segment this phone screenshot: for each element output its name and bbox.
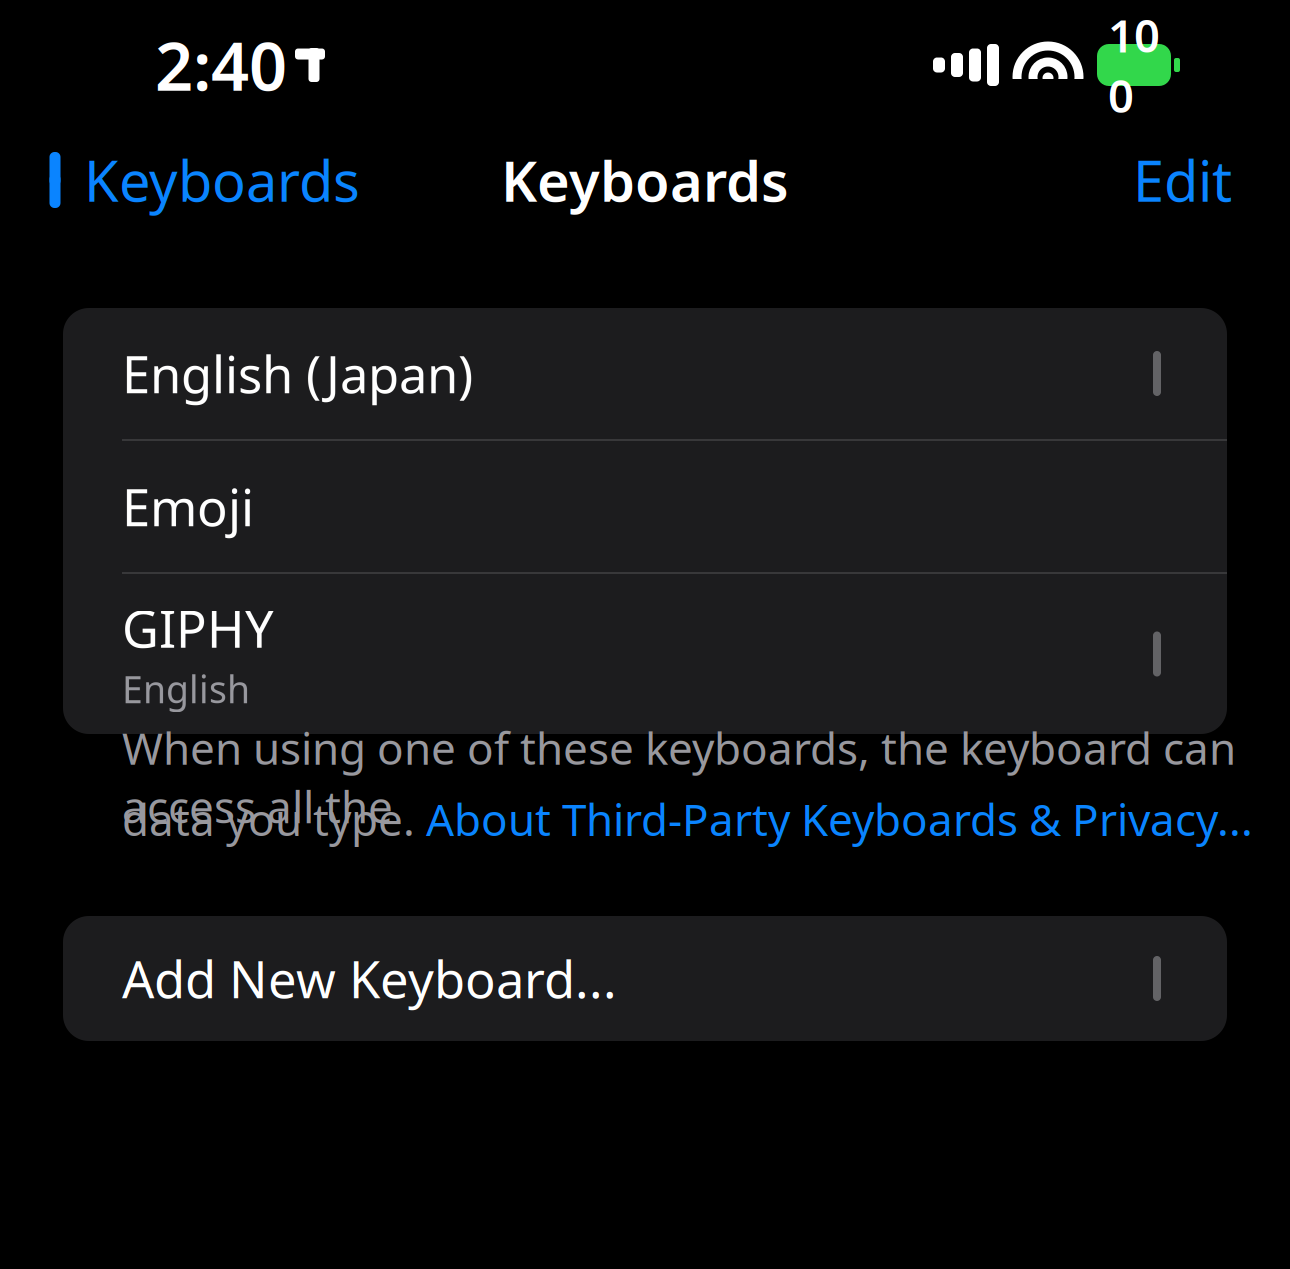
button[interactable]: About Third-Party Keyboards & Privacy... — [426, 790, 1253, 848]
button[interactable]: Edit — [1075, 132, 1290, 228]
staticText: English (Japan) — [122, 340, 473, 407]
staticText: Emoji — [122, 473, 254, 540]
staticText: When using one of these keyboards, the k… — [122, 719, 1236, 835]
button[interactable]: GIPHY — [63, 574, 1227, 734]
staticText: Keyboards — [501, 143, 789, 217]
staticText: 100 — [1108, 5, 1160, 125]
button[interactable]: Add New Keyboard... — [63, 916, 1227, 1041]
staticText: Add New Keyboard... — [122, 945, 617, 1012]
staticText: GIPHY — [122, 595, 274, 662]
staticText: Keyboards — [84, 143, 360, 217]
button[interactable]: English (Japan) — [63, 308, 1227, 439]
staticText: About Third-Party Keyboards & Privacy... — [426, 790, 1253, 848]
staticText: English — [122, 664, 250, 713]
button[interactable]: Emoji — [63, 441, 1227, 572]
button[interactable]: Keyboards — [0, 132, 400, 228]
staticText: data you type. — [122, 790, 426, 848]
staticText: 2:40 — [155, 21, 287, 109]
staticText: Edit — [1133, 143, 1232, 217]
